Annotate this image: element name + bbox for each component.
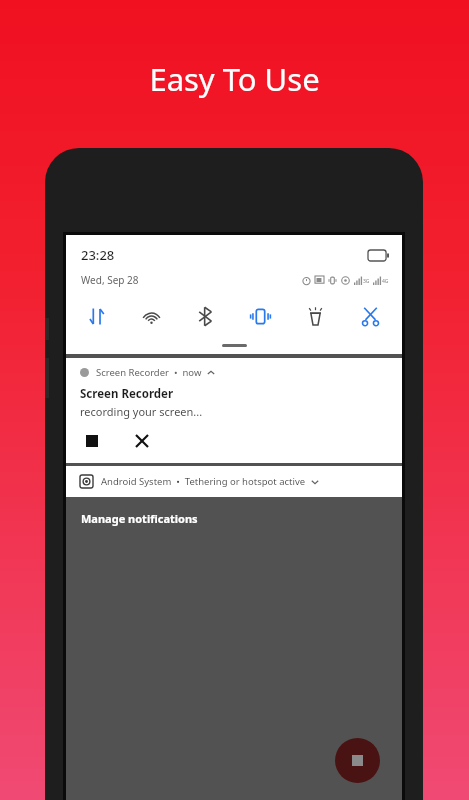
button[interactable]: Screen Recorder • now	[66, 358, 402, 463]
button[interactable]: Vibrate	[233, 301, 288, 331]
staticText: Easy To Use	[149, 58, 320, 100]
button[interactable]: Flashlight	[288, 301, 343, 331]
button[interactable]: Stop	[80, 429, 104, 453]
staticText: Wed, Sep 28	[81, 273, 139, 287]
button[interactable]: Stop recording	[335, 738, 380, 783]
button[interactable]: Bluetooth	[178, 301, 233, 331]
staticText: 3G	[363, 278, 370, 285]
staticText: No recordings...	[163, 397, 305, 423]
button[interactable]: Wi-Fi	[124, 301, 178, 331]
button[interactable]: Screenshot	[343, 301, 398, 331]
staticText: Screen Recorder • now	[96, 366, 202, 379]
button[interactable]: Cancel	[130, 429, 154, 453]
staticText: recording your screen...	[80, 404, 203, 419]
button[interactable]: Manage notifications	[66, 511, 198, 526]
staticText: Screen Recorder	[80, 386, 174, 402]
button[interactable]: Android System • Tethering or hotspot ac…	[66, 466, 402, 497]
staticText: 4G	[382, 278, 389, 285]
staticText: 23:28	[81, 246, 115, 264]
staticText: Android System • Tethering or hotspot ac…	[101, 475, 306, 488]
button[interactable]: Mobile data	[70, 301, 124, 331]
